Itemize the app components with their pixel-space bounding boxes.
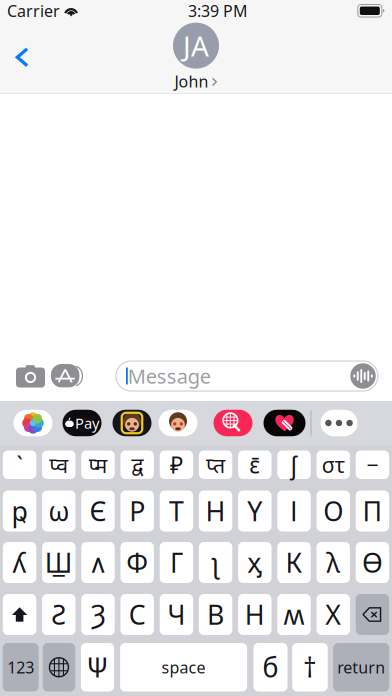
staticText: Ȝ [90,597,105,632]
button[interactable]: ₽ [160,450,193,479]
button[interactable]: † [292,643,328,691]
button[interactable]: Ө [356,542,389,583]
button[interactable]: 123 [3,643,39,691]
staticText: О [323,493,343,529]
button[interactable]: Shift [3,594,36,635]
button[interactable]: ҏ [3,490,36,531]
button[interactable]: λ [316,542,350,583]
staticText: С [129,597,146,632]
button[interactable]: Є [81,490,115,531]
button[interactable]: Next keyboard [43,643,75,691]
staticText: Carrier [7,0,60,21]
staticText: Т [169,493,184,529]
button[interactable]: І [277,490,311,531]
staticText: प्व [49,451,68,479]
button[interactable]: ʍ [277,594,311,635]
staticText: return [337,657,385,678]
button[interactable]: О [316,490,350,531]
staticText: ` [17,450,23,480]
button[interactable]: ʃ [277,450,311,479]
staticText: ӽ [247,545,262,580]
button[interactable]: Γ [160,542,193,583]
button[interactable]: space [120,643,247,691]
button[interactable]: Back [0,32,44,82]
button[interactable]: Р [120,490,154,531]
staticText: Н [206,493,226,529]
staticText: द्व [131,451,143,479]
staticText: − [366,451,378,479]
button[interactable]: ӽ [238,542,271,583]
button[interactable]: प्व [42,450,75,479]
button[interactable]: ε̄ [238,450,271,479]
staticText: Ү [247,493,262,529]
staticText: ω [48,493,69,529]
staticText: 3:39 PM [188,0,248,21]
button[interactable]: JA [173,23,219,92]
button[interactable]: П [356,490,389,531]
button[interactable]: प्त [199,450,232,479]
button[interactable]: Delete [356,594,389,635]
button[interactable]: Record audio [350,363,376,389]
button[interactable]: В [199,594,232,635]
button[interactable]: App Store [51,361,83,391]
button[interactable]: Health [263,410,305,436]
button[interactable]: Т [160,490,193,531]
button[interactable]: ω [42,490,75,531]
staticText: Γ [170,545,183,580]
staticText: Н [245,597,265,632]
button[interactable]: Н [199,490,232,531]
staticText: प्त [206,451,225,479]
staticText: space [162,657,206,678]
button[interactable]: Ψ [81,643,114,691]
staticText: Р [129,493,145,529]
button[interactable]: Ȝ [81,594,115,635]
staticText: ₽ [170,450,183,480]
staticText: Ө [362,545,383,580]
staticText: Є [89,493,106,529]
button[interactable]: − [356,450,389,479]
button[interactable]: ʎ [3,542,36,583]
button[interactable]: Apple Pay [62,410,101,436]
staticText: ҏ [12,493,28,529]
staticText: Message [128,363,211,389]
button[interactable]: ʅ [199,542,232,583]
button[interactable]: Ф [120,542,154,583]
staticText: † [303,649,317,685]
staticText: 123 [7,657,34,678]
button[interactable]: ᴧ [81,542,115,583]
button[interactable]: Х [316,594,350,635]
button[interactable]: Ч [160,594,193,635]
button[interactable]: Ш̲ [42,542,75,583]
staticText: ʍ [283,597,304,632]
staticText: ε̄ [249,450,260,480]
staticText: П [362,493,382,529]
button[interactable]: Ү [238,490,271,531]
button[interactable]: द्व [120,450,154,479]
button[interactable]: б [253,643,287,691]
staticText: στ [322,451,345,479]
button[interactable]: Camera [16,361,46,391]
button[interactable]: Memoji stickers [112,410,151,436]
button[interactable]: Memoji [158,410,197,436]
button[interactable]: प्म [81,450,115,479]
button[interactable]: More apps [320,410,357,436]
button[interactable]: ` [3,450,36,479]
staticText: В [207,597,224,632]
staticText: ʃ [290,448,297,481]
button[interactable]: return [333,643,389,691]
staticText: Ƨ [51,597,66,632]
staticText: ʅ [212,545,219,580]
staticText: К [285,545,302,580]
staticText: Ψ [86,649,108,685]
button[interactable]: Images [213,410,252,436]
staticText: Х [325,597,341,632]
button[interactable]: Photos [13,410,52,436]
button[interactable]: στ [316,450,350,479]
button[interactable]: К [277,542,311,583]
button[interactable]: Ƨ [42,594,75,635]
button[interactable]: С [120,594,154,635]
staticText: JA [183,27,209,64]
staticText: Ч [167,597,185,632]
staticText: Ш̲ [45,545,73,580]
button[interactable]: Н [238,594,271,635]
